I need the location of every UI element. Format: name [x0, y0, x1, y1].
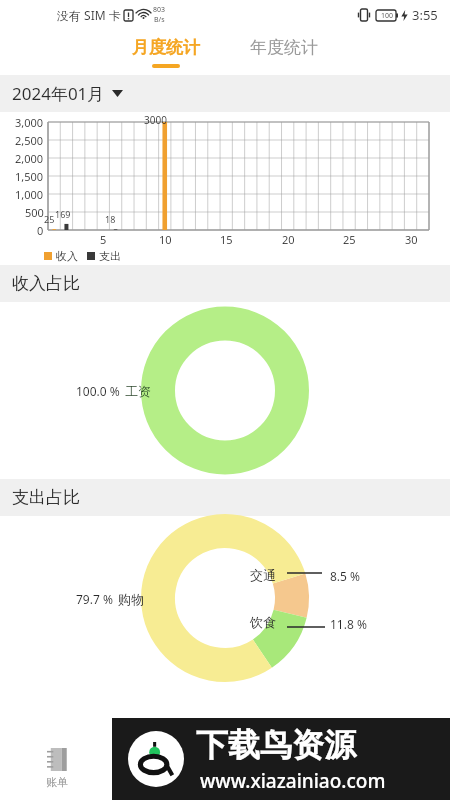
staticText: 2,500 [15, 133, 44, 148]
staticText: 25 [44, 213, 55, 225]
staticText: 100 [381, 11, 394, 21]
staticText: 1,000 [15, 187, 44, 202]
staticText: 18 [105, 213, 116, 225]
staticText: 收入 [56, 249, 78, 263]
staticText: 账单 [46, 775, 68, 789]
staticText: 工资 [125, 383, 151, 399]
staticText: 20 [282, 232, 295, 247]
staticText: 0 [37, 223, 44, 238]
staticText: www.xiazainiao.com [200, 768, 386, 794]
staticText: 购物 [118, 591, 144, 607]
staticText: 没有 SIM 卡 [57, 7, 121, 23]
staticText: 803 [153, 5, 166, 15]
staticText: 支出 [99, 249, 121, 263]
staticText: 1,500 [15, 169, 44, 184]
staticText: 交通 [250, 567, 276, 583]
button[interactable]: 2024年01月 [0, 75, 450, 112]
staticText: 下载鸟资源 [196, 725, 356, 765]
staticText: 500 [25, 205, 44, 220]
staticText: 8.5 % [330, 568, 361, 584]
staticText: 11.8 % [330, 616, 367, 632]
staticText: 年度统计 [250, 37, 318, 58]
staticText: B/s [154, 15, 165, 25]
staticText: 3,000 [15, 115, 44, 130]
staticText: 25 [343, 232, 356, 247]
staticText: 3:55 [412, 6, 438, 24]
button[interactable]: 月度统计 [118, 34, 214, 71]
staticText: 5 [100, 232, 107, 247]
staticText: 月度统计 [132, 37, 200, 58]
staticText: 169 [55, 208, 71, 220]
staticText: 2024年01月 [12, 82, 105, 105]
staticText: 3000 [144, 113, 167, 127]
staticText: 2,000 [15, 151, 44, 166]
staticText: 30 [405, 232, 418, 247]
staticText: 支出占比 [12, 487, 80, 508]
staticText: 收入占比 [12, 273, 80, 294]
staticText: 饮食 [250, 614, 276, 630]
button[interactable]: 年度统计 [236, 34, 332, 71]
staticText: 79.7 % [76, 591, 113, 607]
staticText: 10 [159, 232, 172, 247]
staticText: 100.0 % [76, 383, 120, 399]
button[interactable]: 账单 [40, 742, 74, 795]
staticText: 15 [220, 232, 233, 247]
